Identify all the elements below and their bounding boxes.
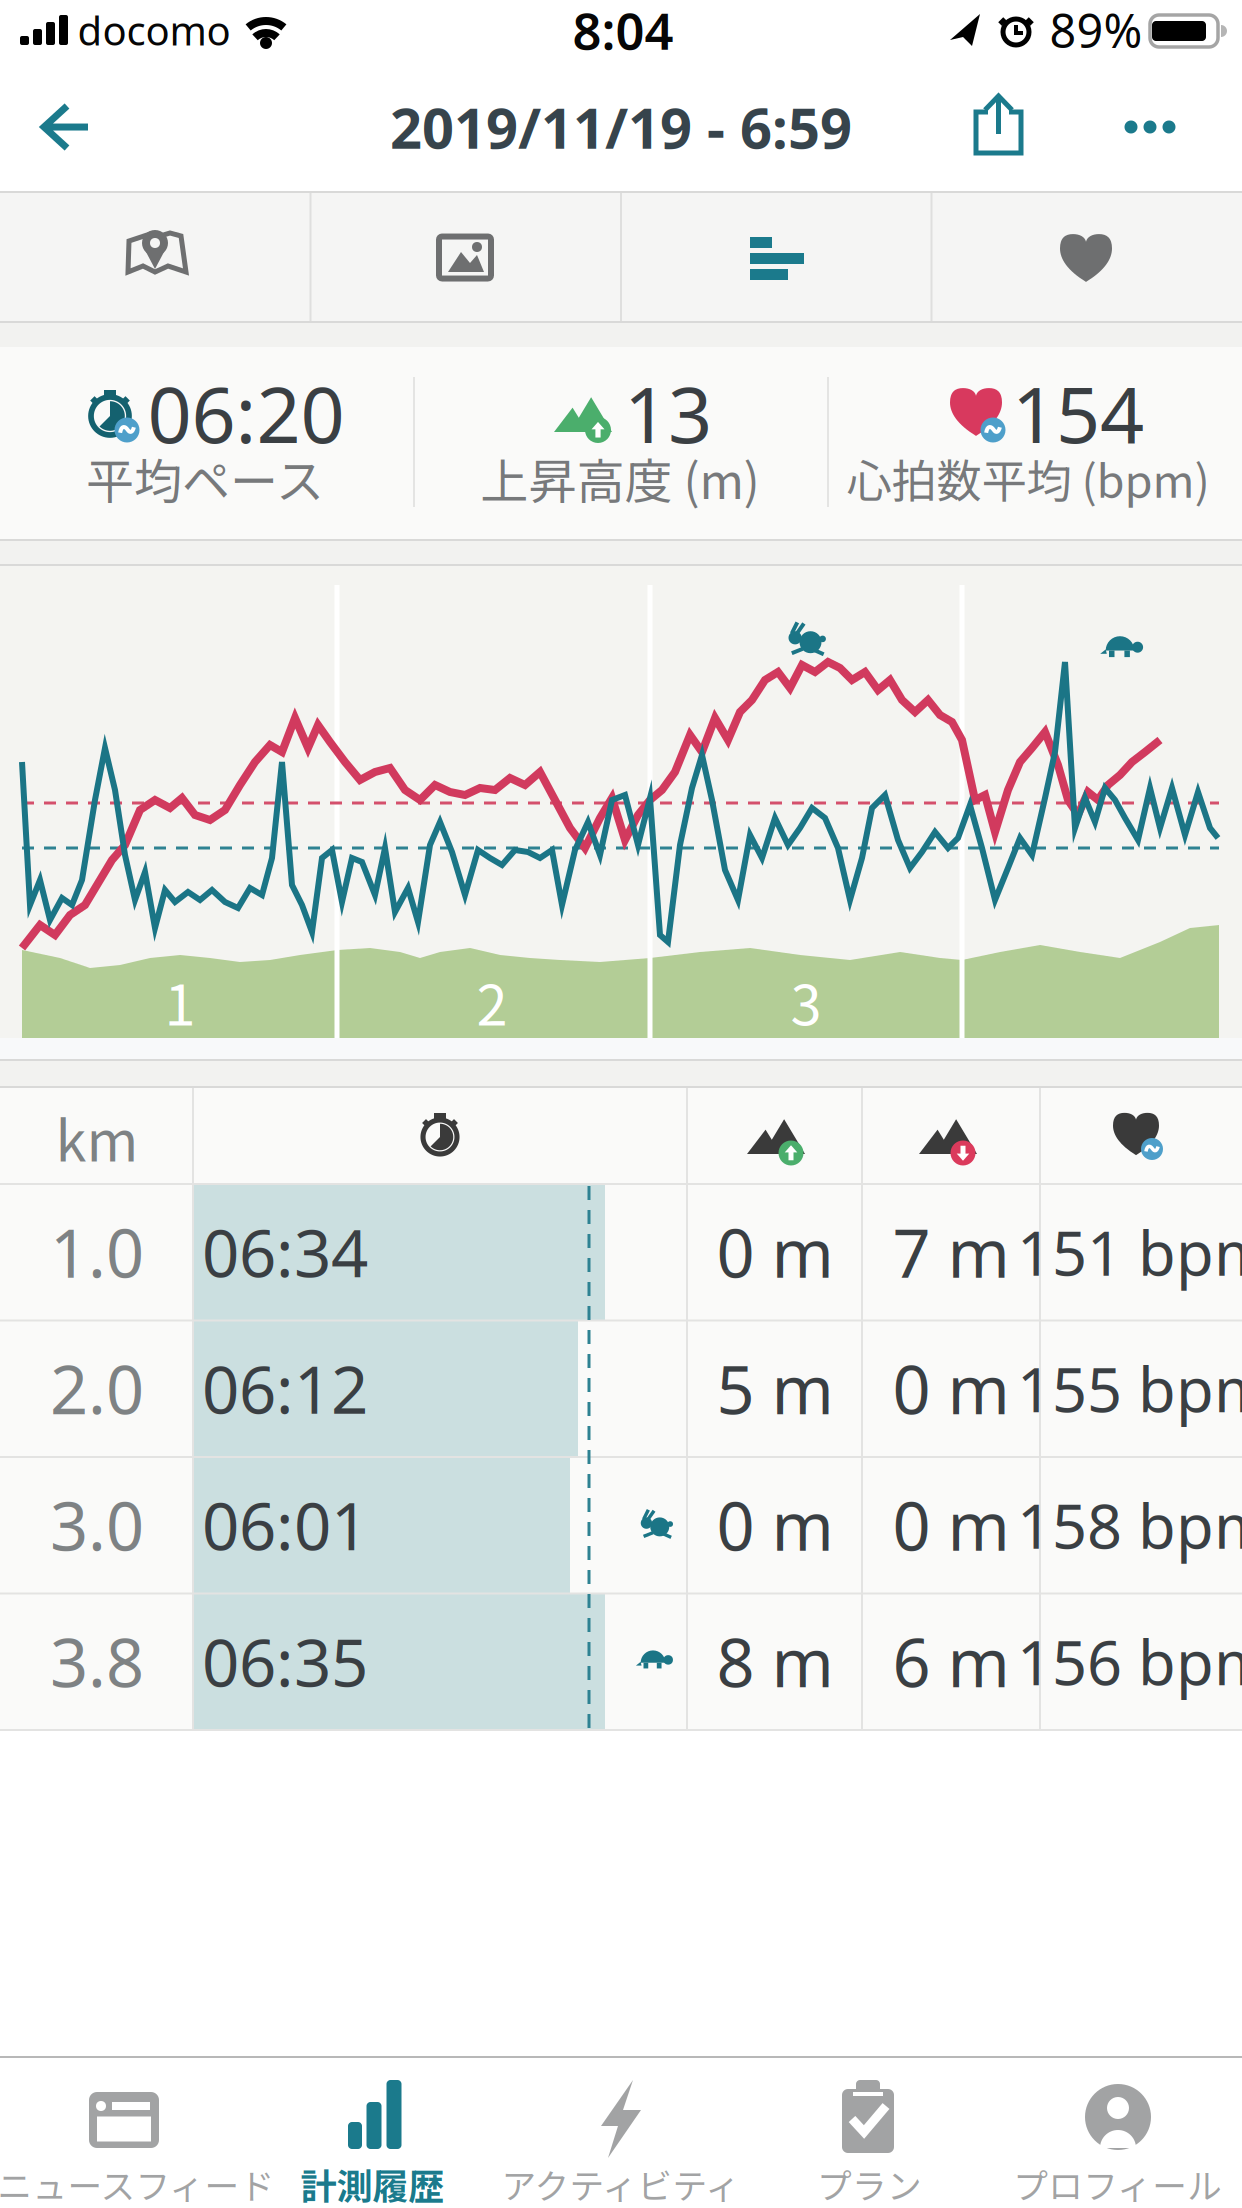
staticText: 0 m bbox=[716, 1481, 833, 1569]
staticText: ニュースフィード bbox=[0, 2159, 274, 2208]
staticText: 8 m bbox=[716, 1617, 833, 1706]
staticText: アクティビティ bbox=[501, 2159, 740, 2208]
staticText: 13 bbox=[624, 362, 712, 464]
staticText: 6 m bbox=[892, 1617, 1009, 1706]
staticText: 3.8 bbox=[50, 1617, 144, 1706]
staticText: 156 bpm bbox=[1017, 1621, 1242, 1702]
staticText: 06:35 bbox=[202, 1618, 368, 1705]
staticText: 計測履歴 bbox=[301, 2158, 445, 2208]
staticText: 1 bbox=[164, 960, 195, 1042]
button[interactable]: Map bbox=[0, 0, 1242, 2208]
staticText: 151 bpm bbox=[1017, 1211, 1242, 1293]
staticText: 1.0 bbox=[50, 1208, 144, 1296]
staticText: km bbox=[55, 1096, 138, 1178]
staticText: 154 bbox=[1012, 362, 1144, 464]
staticText: 06:12 bbox=[202, 1345, 368, 1432]
button[interactable]: More bbox=[0, 0, 1242, 2208]
staticText: 上昇高度 (m) bbox=[480, 443, 759, 513]
button[interactable]: Activity bbox=[0, 0, 1242, 2208]
button[interactable]: Profile bbox=[0, 0, 1242, 2208]
button[interactable]: Share bbox=[0, 0, 1242, 2208]
button[interactable]: History bbox=[0, 0, 1242, 2208]
staticText: 3 bbox=[790, 960, 821, 1042]
staticText: プロフィール bbox=[1013, 2159, 1222, 2208]
staticText: 8:04 bbox=[572, 0, 673, 64]
button[interactable]: Plan bbox=[0, 0, 1242, 2208]
staticText: 155 bpm bbox=[1017, 1348, 1242, 1429]
staticText: 0 m bbox=[892, 1481, 1009, 1569]
staticText: 158 bpm bbox=[1017, 1484, 1242, 1566]
staticText: 3.0 bbox=[50, 1481, 144, 1569]
button[interactable]: Back bbox=[0, 0, 1242, 2208]
staticText: docomo bbox=[77, 3, 230, 56]
staticText: 0 m bbox=[716, 1208, 833, 1296]
button[interactable]: Heart rate bbox=[0, 0, 1242, 2208]
staticText: 89% bbox=[1049, 0, 1142, 61]
staticText: 06:01 bbox=[202, 1482, 368, 1568]
button[interactable]: Photos bbox=[0, 0, 1242, 2208]
staticText: プラン bbox=[817, 2159, 922, 2208]
staticText: 2 bbox=[476, 960, 507, 1042]
staticText: 06:20 bbox=[147, 362, 344, 464]
staticText: 06:34 bbox=[202, 1209, 368, 1295]
button[interactable]: News feed bbox=[0, 0, 1242, 2208]
staticText: 平均ペース bbox=[86, 443, 324, 513]
button[interactable]: Graphs bbox=[0, 0, 1242, 2208]
staticText: 0 m bbox=[892, 1344, 1009, 1433]
staticText: 2.0 bbox=[50, 1344, 144, 1433]
staticText: 5 m bbox=[716, 1344, 833, 1433]
staticText: 2019/11/19 - 6:59 bbox=[390, 90, 852, 164]
staticText: 7 m bbox=[892, 1208, 1009, 1296]
staticText: 心拍数平均 (bpm) bbox=[846, 445, 1209, 511]
